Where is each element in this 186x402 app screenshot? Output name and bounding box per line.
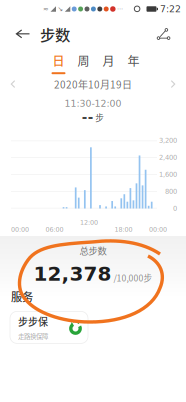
staticText: 800 xyxy=(165,188,177,195)
button[interactable]: 日 xyxy=(46,50,71,78)
staticText: 走路换保障 xyxy=(18,331,48,341)
button[interactable]: 步步保 xyxy=(10,311,88,343)
staticText: 2020年10月19日 xyxy=(54,77,132,91)
staticText: 步数 xyxy=(40,23,70,45)
button[interactable]: 步数 xyxy=(40,18,70,50)
button[interactable]: 月 xyxy=(96,50,121,78)
staticText: 12:00 xyxy=(80,219,98,226)
button[interactable]: 年 xyxy=(121,50,146,78)
button[interactable]: Previous day xyxy=(5,77,21,91)
staticText: 00:00 xyxy=(11,226,29,233)
staticText: -- xyxy=(82,110,94,125)
staticText: 总步数 xyxy=(79,244,106,257)
staticText: 06:00 xyxy=(45,226,63,233)
staticText: 3,200 xyxy=(159,137,177,144)
button[interactable]: Back xyxy=(12,18,34,50)
staticText: 7:22 xyxy=(160,4,181,14)
staticText: 18:00 xyxy=(114,226,132,233)
staticText: /10,000步 xyxy=(113,271,152,284)
staticText: 12,378 xyxy=(33,262,111,285)
staticText: ≈ xyxy=(43,5,49,13)
staticText: 步步保 xyxy=(18,314,48,328)
staticText: 周 xyxy=(77,52,89,69)
staticText: 服务 xyxy=(11,288,33,304)
staticText: 11:30-12:00 xyxy=(64,98,121,109)
button[interactable]: 周 xyxy=(71,50,96,78)
staticText: 日 xyxy=(52,52,64,69)
staticText: 步 xyxy=(95,111,104,124)
staticText: ↘ xyxy=(57,5,63,13)
staticText: 年 xyxy=(127,52,139,69)
staticText: 00:00 xyxy=(149,226,167,233)
button[interactable]: Share xyxy=(153,18,173,50)
staticText: 1,600 xyxy=(159,171,177,178)
button[interactable]: Next day xyxy=(165,77,181,91)
staticText: ··· xyxy=(117,5,123,13)
staticText: 0 xyxy=(173,205,177,212)
staticText: 2,400 xyxy=(159,154,177,161)
staticText: 月 xyxy=(102,52,114,69)
